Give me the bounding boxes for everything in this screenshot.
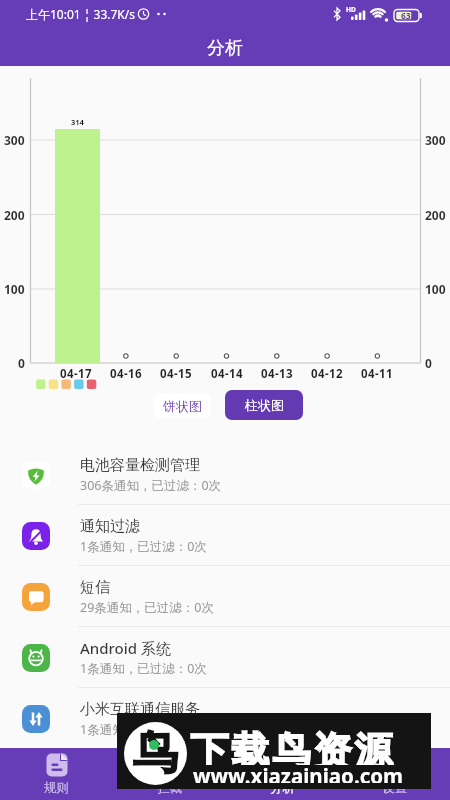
staticText: 短信	[80, 578, 110, 597]
button[interactable]: 柱状图	[225, 390, 303, 420]
button[interactable]: 通知过滤	[0, 505, 450, 566]
button[interactable]: 拦截	[113, 748, 226, 800]
staticText: 63	[401, 10, 411, 22]
staticText: 04-14	[211, 366, 243, 380]
staticText: 小米互联通信服务	[80, 700, 200, 719]
staticText: 200	[425, 207, 446, 223]
button[interactable]: 电池容量检测管理	[0, 444, 450, 505]
staticText: 上午10:01 ¦ 33.7K/s	[26, 6, 135, 22]
button[interactable]: 饼状图	[154, 393, 211, 418]
staticText: 04-15	[160, 366, 192, 380]
staticText: 设置	[382, 780, 407, 796]
staticText: www.xiazainiao.com	[193, 762, 404, 783]
staticText: 鸟	[133, 725, 178, 782]
staticText: 下载鸟资源	[189, 727, 394, 765]
button[interactable]: Android 系统	[0, 627, 450, 688]
button[interactable]: 短信	[0, 566, 450, 627]
staticText: 300	[425, 132, 446, 148]
staticText: 0	[425, 355, 432, 371]
staticText: 电池容量检测管理	[80, 456, 200, 475]
staticText: 柱状图	[245, 397, 284, 413]
staticText: 1条通知，已过滤：0次	[80, 721, 207, 738]
staticText: 300	[4, 132, 25, 148]
staticText: 分析	[207, 37, 243, 60]
button[interactable]: 小米互联通信服务	[0, 688, 450, 749]
staticText: 0	[18, 355, 25, 371]
staticText: 拦截	[157, 780, 182, 796]
staticText: 04-17	[60, 366, 92, 380]
staticText: 04-12	[311, 366, 343, 380]
staticText: 29条通知，已过滤：0次	[80, 599, 214, 616]
staticText: 通知过滤	[80, 517, 140, 536]
staticText: HD	[346, 5, 356, 14]
staticText: 100	[425, 281, 446, 297]
staticText: 314	[71, 117, 84, 127]
button[interactable]: 规则	[0, 748, 113, 800]
staticText: 306条通知，已过滤：0次	[80, 477, 222, 494]
staticText: Android 系统	[80, 638, 171, 658]
button[interactable]: 设置	[339, 748, 450, 800]
staticText: 饼状图	[163, 398, 202, 414]
staticText: 100	[4, 281, 25, 297]
staticText: 04-16	[110, 366, 142, 380]
staticText: 200	[4, 207, 25, 223]
staticText: 04-13	[261, 366, 293, 380]
staticText: 1条通知，已过滤：0次	[80, 538, 207, 555]
staticText: 04-11	[361, 366, 393, 380]
staticText: 1条通知，已过滤：0次	[80, 660, 207, 677]
staticText: 分析	[270, 780, 295, 796]
staticText: 规则	[44, 780, 69, 796]
button[interactable]: 分析	[226, 748, 339, 800]
